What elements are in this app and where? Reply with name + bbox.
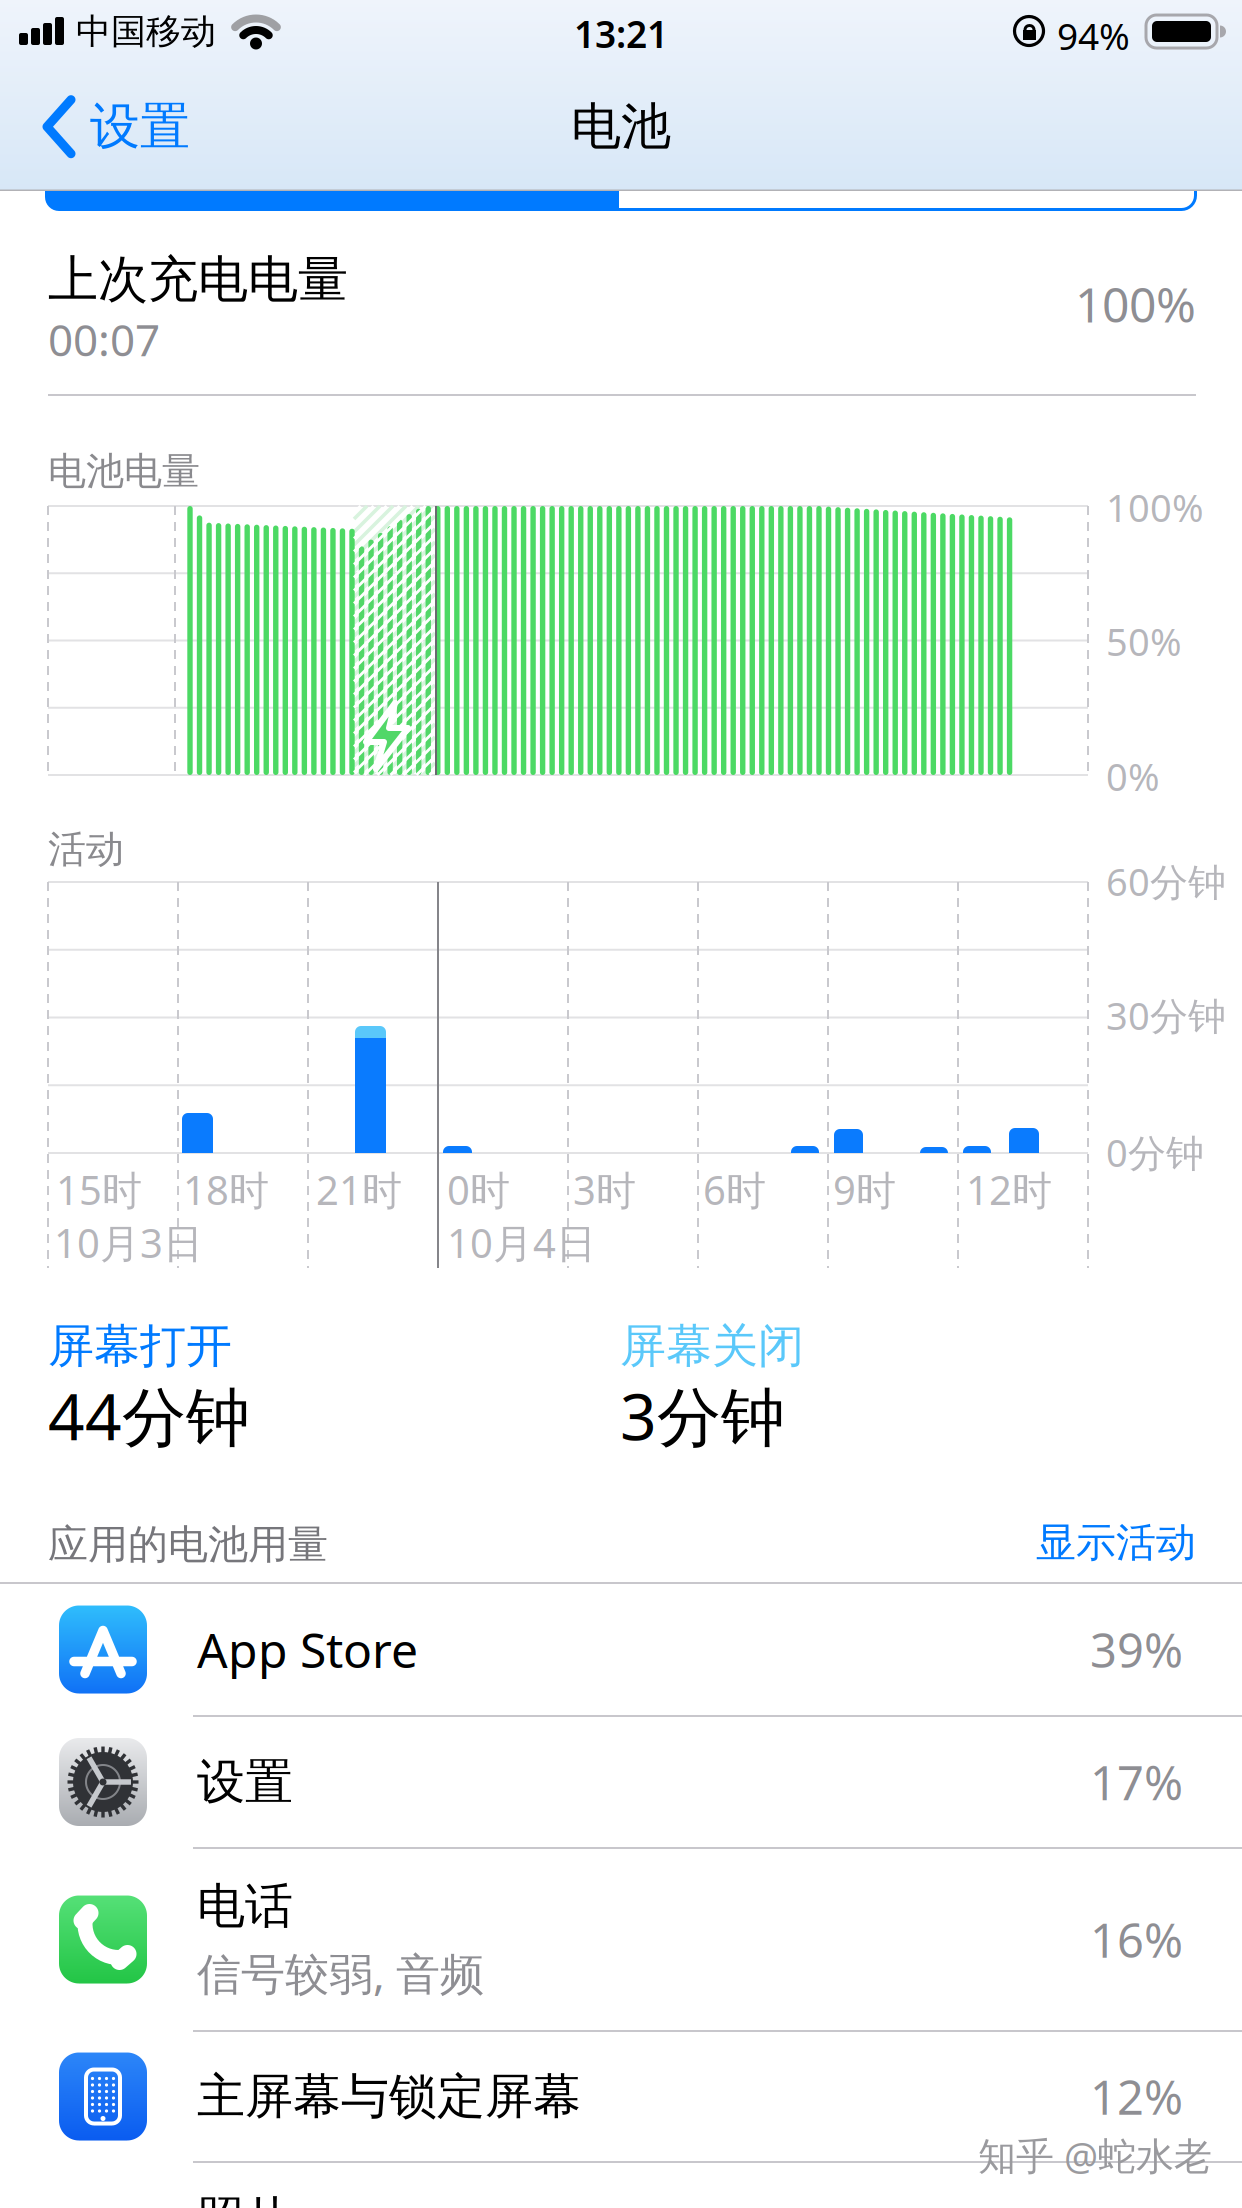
staticText: 12% bbox=[1090, 2065, 1183, 2128]
staticText: 中国移动 bbox=[76, 10, 216, 53]
staticText: 电池 bbox=[571, 96, 671, 157]
staticText: 18时 bbox=[183, 1163, 269, 1216]
staticText: 0% bbox=[1106, 751, 1160, 801]
staticText: 照片 bbox=[197, 2190, 293, 2208]
staticText: 知乎 @蛇水老 bbox=[978, 2130, 1212, 2180]
staticText: 17% bbox=[1090, 1751, 1183, 1813]
staticText: 10月4日 bbox=[447, 1216, 596, 1269]
staticText: 应用的电池用量 bbox=[48, 1520, 328, 1569]
staticText: 12时 bbox=[966, 1163, 1052, 1216]
staticText: 50% bbox=[1106, 616, 1182, 666]
button[interactable]: 返回设置 bbox=[0, 0, 190, 157]
staticText: 上次充电电量 bbox=[48, 249, 348, 310]
staticText: 电话 bbox=[197, 1877, 293, 1936]
button[interactable]: 主屏幕与锁定屏幕 bbox=[0, 2032, 1242, 2161]
staticText: 9时 bbox=[833, 1163, 896, 1216]
staticText: 100% bbox=[1106, 482, 1204, 532]
staticText: 活动 bbox=[48, 826, 124, 873]
staticText: 100% bbox=[1075, 272, 1196, 336]
button[interactable]: App Store bbox=[0, 1584, 1242, 1715]
staticText: 21时 bbox=[316, 1163, 402, 1216]
button[interactable]: 最近10天 bbox=[619, 150, 1197, 211]
button[interactable]: 显示活动 bbox=[1036, 1518, 1196, 1567]
staticText: 0时 bbox=[447, 1163, 510, 1216]
staticText: 显示活动 bbox=[1036, 1518, 1196, 1567]
staticText: 屏幕打开 bbox=[48, 1318, 232, 1374]
staticText: 3分钟 bbox=[620, 1373, 785, 1458]
staticText: 00:07 bbox=[48, 310, 160, 368]
staticText: 电池电量 bbox=[48, 448, 200, 495]
staticText: 信号较弱, 音频 bbox=[197, 1944, 484, 2002]
button[interactable]: 电话 bbox=[0, 1849, 1242, 2030]
staticText: 设置 bbox=[197, 1752, 293, 1811]
staticText: 0分钟 bbox=[1106, 1127, 1204, 1177]
staticText: 60分钟 bbox=[1106, 856, 1226, 906]
staticText: 3时 bbox=[573, 1163, 636, 1216]
staticText: 6时 bbox=[703, 1163, 766, 1216]
staticText: App Store bbox=[197, 1618, 418, 1681]
staticText: 13:21 bbox=[574, 9, 668, 58]
staticText: 39% bbox=[1090, 1618, 1183, 1681]
staticText: 10月3日 bbox=[54, 1216, 203, 1269]
button[interactable]: 设置 bbox=[0, 1717, 1242, 1847]
staticText: 屏幕关闭 bbox=[620, 1318, 804, 1374]
button[interactable]: 最近24小时 bbox=[45, 150, 619, 211]
staticText: 设置 bbox=[90, 96, 190, 157]
staticText: 30分钟 bbox=[1106, 990, 1226, 1040]
staticText: 94% bbox=[1057, 11, 1130, 60]
staticText: 44分钟 bbox=[48, 1373, 250, 1458]
staticText: 15时 bbox=[56, 1163, 142, 1216]
staticText: 主屏幕与锁定屏幕 bbox=[197, 2067, 581, 2126]
staticText: 16% bbox=[1090, 1908, 1183, 1971]
